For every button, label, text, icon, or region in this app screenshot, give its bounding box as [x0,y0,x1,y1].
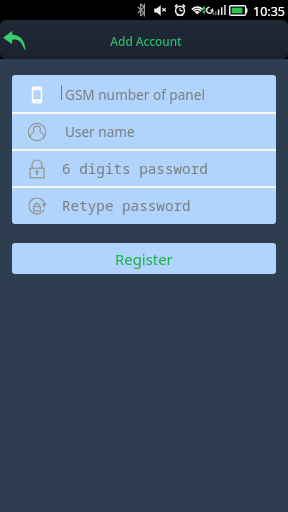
staticText: Add Account [110,33,182,49]
staticText: Register [115,249,173,269]
staticText: 6 digits password [62,159,208,178]
staticText: GSM number of panel [65,85,205,104]
staticText: User name [65,122,135,141]
button[interactable]: 6 digits password [12,151,276,186]
button[interactable]: User name [12,114,276,149]
button[interactable]: Retype password [12,188,276,223]
button[interactable]: Back [0,24,32,56]
staticText: Retype password [62,196,191,215]
staticText: 10:35 [253,3,285,20]
button[interactable]: GSM number of panel [12,77,276,112]
button[interactable]: Register [12,243,276,274]
